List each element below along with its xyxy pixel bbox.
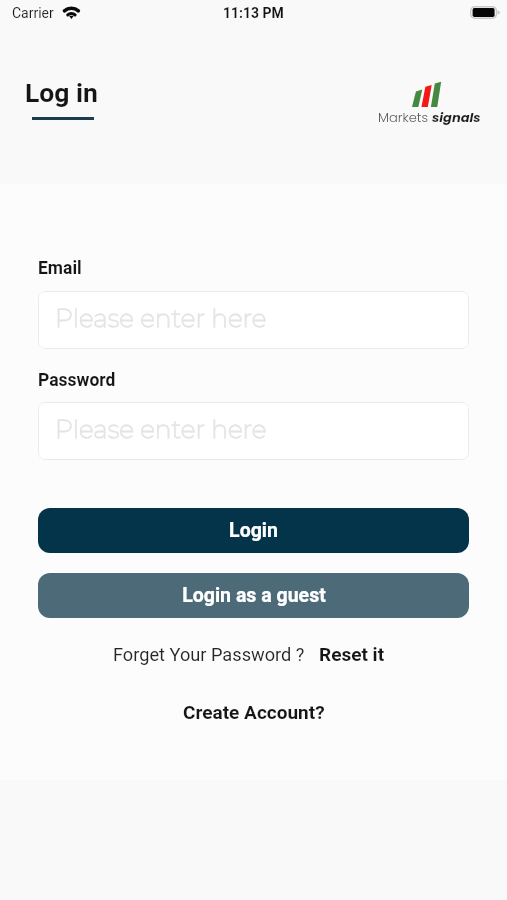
staticText: Login (229, 519, 278, 542)
staticText: Log in (25, 77, 98, 108)
button[interactable]: Login as a guest (38, 573, 469, 618)
button[interactable]: Login (38, 508, 469, 553)
staticText: Reset it (319, 643, 385, 665)
button[interactable]: Reset it (319, 643, 385, 665)
staticText: Email (38, 258, 82, 279)
staticText: 11:13 PM (223, 5, 284, 21)
staticText: Please enter here (55, 303, 267, 333)
staticText: Login as a guest (182, 584, 326, 607)
staticText: signals (432, 108, 481, 126)
staticText: Carrier (12, 5, 54, 21)
button[interactable]: Please enter here (38, 291, 469, 349)
staticText: Markets (378, 108, 432, 126)
staticText: Password (38, 370, 116, 391)
button[interactable]: Create Account? (38, 701, 469, 723)
staticText: Please enter here (55, 414, 267, 444)
staticText: Forget Your Password ? (113, 644, 305, 665)
button[interactable]: Please enter here (38, 402, 469, 460)
staticText: Create Account? (183, 701, 325, 723)
